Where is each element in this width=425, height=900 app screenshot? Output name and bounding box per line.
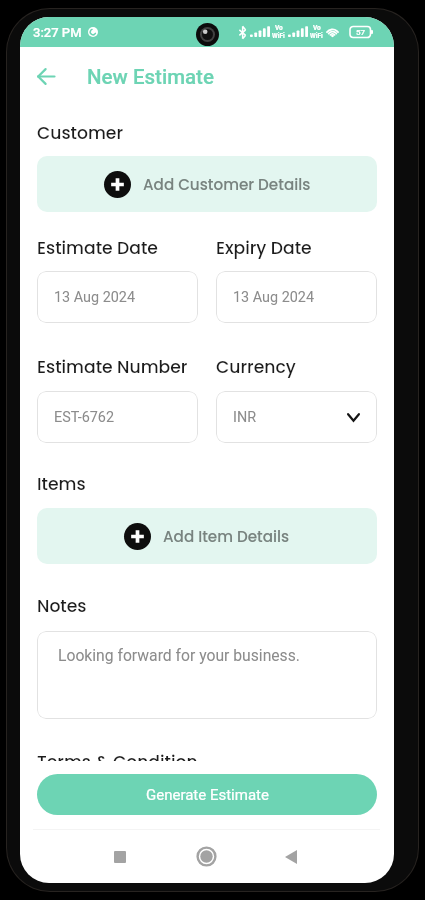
staticText: Estimate Date (37, 236, 158, 260)
button[interactable]: Recent apps (97, 834, 142, 879)
button[interactable]: INR (216, 391, 377, 443)
staticText: Currency (216, 355, 296, 379)
staticText: Customer (37, 121, 124, 145)
staticText: Add Customer Details (143, 174, 311, 195)
staticText: Add Item Details (163, 526, 290, 547)
staticText: Looking forward for your business. (58, 646, 300, 664)
button[interactable]: 13 Aug 2024 (37, 271, 198, 323)
button[interactable]: Generate Estimate (37, 774, 377, 815)
staticText: 13 Aug 2024 (54, 289, 135, 306)
staticText: 3:27 PM (33, 25, 82, 40)
staticText: Notes (37, 594, 87, 618)
staticText: Generate Estimate (146, 786, 269, 804)
button[interactable]: Back (268, 834, 313, 879)
staticText: Items (37, 472, 86, 496)
staticText: Vo (313, 24, 321, 32)
staticText: 13 Aug 2024 (233, 289, 314, 306)
staticText: INR (233, 409, 257, 426)
button[interactable]: Looking forward for your business. (37, 631, 377, 719)
staticText: EST-6762 (54, 409, 115, 426)
button[interactable]: Back (25, 56, 66, 97)
button[interactable]: 13 Aug 2024 (216, 271, 377, 323)
staticText: WiFi (310, 32, 323, 40)
button[interactable]: Add Item Details (37, 508, 377, 564)
staticText: Estimate Number (37, 355, 188, 379)
staticText: Terms & Condition (37, 750, 198, 761)
staticText: 57 (356, 28, 366, 37)
button[interactable]: EST-6762 (37, 391, 198, 443)
staticText: New Estimate (87, 65, 214, 89)
staticText: Vo (275, 24, 283, 32)
staticText: Expiry Date (216, 236, 312, 260)
button[interactable]: Home (184, 834, 229, 879)
button[interactable]: Add Customer Details (37, 156, 377, 212)
staticText: WiFi (272, 32, 285, 40)
